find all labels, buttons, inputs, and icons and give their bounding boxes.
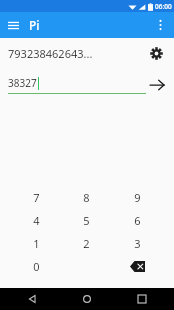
button[interactable]: 9 bbox=[112, 186, 163, 209]
button[interactable]: 4 bbox=[11, 209, 61, 232]
button[interactable]: Recent apps bbox=[132, 289, 152, 309]
button[interactable]: Home bbox=[77, 289, 97, 309]
button[interactable]: 5 bbox=[61, 209, 112, 232]
button[interactable]: 3 bbox=[112, 232, 163, 255]
staticText: 3 bbox=[134, 236, 141, 251]
staticText: 8 bbox=[83, 190, 90, 205]
button[interactable]: Open navigation menu bbox=[4, 16, 22, 34]
staticText: 4 bbox=[33, 213, 40, 228]
staticText: 1 bbox=[33, 236, 40, 251]
staticText: 06:00 bbox=[155, 2, 172, 11]
staticText: Pi bbox=[29, 17, 40, 33]
staticText: 5 bbox=[83, 213, 90, 228]
button[interactable]: 38327 bbox=[8, 76, 146, 94]
staticText: 6 bbox=[134, 213, 141, 228]
staticText: 0 bbox=[33, 259, 40, 274]
staticText: 38327 bbox=[8, 76, 37, 90]
button[interactable]: Back bbox=[22, 289, 42, 309]
staticText: 7 bbox=[33, 190, 40, 205]
button[interactable]: 1 bbox=[11, 232, 61, 255]
button[interactable]: 8 bbox=[61, 186, 112, 209]
button[interactable]: Settings bbox=[146, 43, 166, 63]
button[interactable]: More options bbox=[151, 16, 169, 34]
staticText: 2 bbox=[83, 236, 90, 251]
button[interactable]: 0 bbox=[11, 255, 61, 278]
staticText: 793238462643... bbox=[8, 46, 93, 61]
button[interactable]: Backspace bbox=[112, 255, 163, 278]
button[interactable]: 7 bbox=[11, 186, 61, 209]
button[interactable]: Submit bbox=[147, 75, 167, 95]
button[interactable]: 2 bbox=[61, 232, 112, 255]
button[interactable]: 6 bbox=[112, 209, 163, 232]
staticText: 9 bbox=[134, 190, 141, 205]
